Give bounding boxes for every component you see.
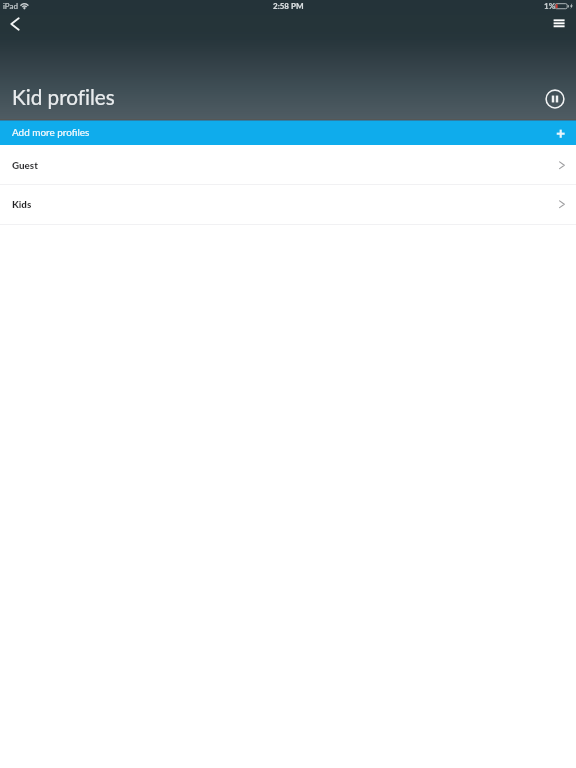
button[interactable]: Menu (550, 15, 568, 32)
button[interactable]: Kids (0, 185, 576, 224)
button[interactable]: Back (0, 8, 31, 40)
staticText: iPad (3, 1, 18, 11)
staticText: Add more profiles (12, 126, 90, 138)
button[interactable]: Add profile (552, 125, 569, 142)
staticText: Guest (12, 159, 38, 171)
button[interactable]: Pause (539, 83, 571, 115)
button[interactable]: Add more profiles (0, 121, 576, 145)
staticText: Kids (12, 198, 32, 210)
staticText: 2:58 PM (273, 1, 304, 11)
staticText: Kid profiles (12, 85, 115, 110)
staticText: 1% (544, 1, 556, 11)
button[interactable]: Guest (0, 145, 576, 184)
